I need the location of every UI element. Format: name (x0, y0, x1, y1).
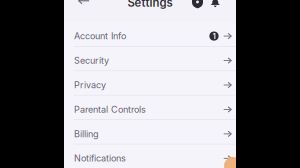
staticText: Parental Controls (74, 104, 146, 115)
button[interactable]: Account Info (64, 22, 236, 46)
button[interactable]: Privacy (64, 71, 236, 95)
button[interactable]: Account security (192, 0, 203, 9)
staticText: Account Info (74, 31, 126, 42)
button[interactable]: Parental Controls (64, 96, 236, 119)
staticText: Billing (74, 128, 99, 139)
button[interactable]: Back (73, 0, 95, 7)
button[interactable]: Notifications (64, 145, 236, 168)
staticText: Settings (127, 0, 172, 10)
button[interactable]: Billing (64, 120, 236, 144)
button[interactable]: Notifications (210, 0, 220, 9)
staticText: Security (74, 55, 109, 66)
staticText: Privacy (74, 79, 106, 90)
button[interactable]: Security (64, 47, 236, 70)
button[interactable]: Compose (224, 157, 242, 168)
staticText: 1 (212, 31, 215, 41)
staticText: Notifications (74, 153, 126, 164)
